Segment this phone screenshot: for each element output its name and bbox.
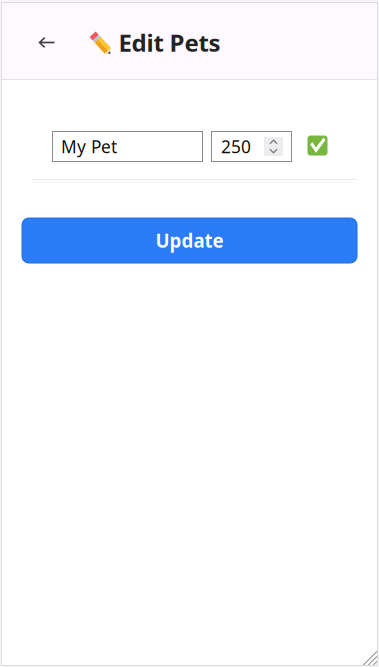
staticText: Update <box>155 228 223 253</box>
button[interactable]: Active <box>307 135 327 155</box>
staticText: 250 <box>221 135 251 158</box>
button[interactable]: 250 <box>211 131 292 162</box>
button[interactable]: My Pet <box>52 131 203 162</box>
staticText: Edit Pets <box>118 27 220 58</box>
staticText: My Pet <box>61 135 117 158</box>
button[interactable]: Back <box>28 24 64 60</box>
button[interactable]: Update <box>22 218 357 263</box>
